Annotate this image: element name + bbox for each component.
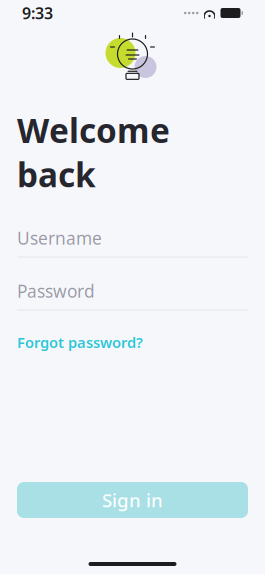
- staticText: Forgot password?: [17, 333, 143, 352]
- staticText: 9:33: [22, 2, 53, 24]
- staticText: Welcome back: [17, 108, 170, 196]
- button[interactable]: Sign in: [17, 482, 248, 518]
- button[interactable]: Forgot password?: [17, 329, 143, 356]
- staticText: Password: [17, 279, 95, 302]
- staticText: Username: [17, 226, 102, 249]
- staticText: Sign in: [102, 488, 163, 512]
